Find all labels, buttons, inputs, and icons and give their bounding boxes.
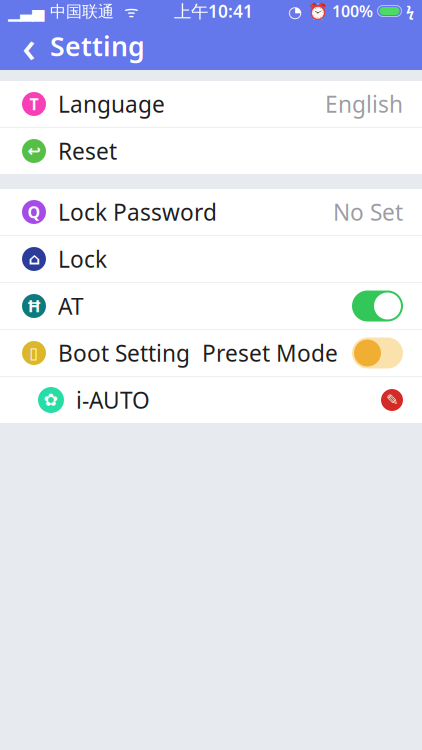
staticText: Ħ — [28, 295, 40, 317]
staticText: AT — [58, 291, 84, 321]
staticText: Reset — [58, 136, 117, 166]
button[interactable]: Back — [8, 22, 50, 70]
button[interactable]: ↩ — [0, 128, 422, 174]
staticText: ‹ — [22, 18, 36, 74]
staticText: Preset Mode — [202, 338, 338, 368]
staticText: Boot Setting — [58, 338, 190, 368]
button[interactable]: ⌂ — [0, 236, 422, 282]
button[interactable]: ✿ — [0, 377, 422, 423]
staticText: ▯ — [29, 344, 38, 362]
staticText: No Set — [333, 197, 403, 227]
staticText: T — [29, 93, 38, 115]
staticText: Lock Password — [58, 197, 217, 227]
staticText: ϟ — [406, 1, 414, 21]
staticText: ⌂ — [28, 250, 39, 268]
staticText: 上午10:41 — [174, 0, 253, 22]
staticText: Language — [58, 89, 165, 119]
staticText: Q — [27, 201, 40, 223]
button[interactable]: T — [0, 81, 422, 127]
staticText: English — [325, 89, 403, 119]
staticText: ▁▃▅ 中国联通 ᯤ — [8, 0, 139, 22]
button[interactable]: Q — [0, 189, 422, 235]
staticText: Setting — [50, 28, 145, 64]
staticText: Lock — [58, 244, 107, 274]
staticText: ✿ — [43, 390, 58, 410]
staticText: ✎ — [386, 392, 398, 408]
staticText: i-AUTO — [76, 385, 150, 415]
button[interactable]: ▯ — [0, 330, 422, 376]
staticText: ◔ ⏰ 100% — [288, 0, 373, 22]
staticText: ↩ — [27, 142, 40, 160]
button[interactable]: Ħ — [0, 283, 422, 329]
